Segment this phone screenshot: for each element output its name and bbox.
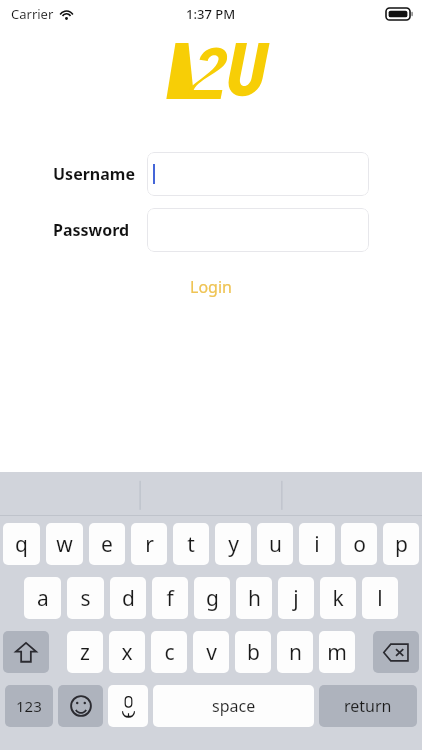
- staticText: a: [37, 584, 49, 613]
- button[interactable]: m: [319, 631, 355, 673]
- staticText: Password: [53, 219, 130, 241]
- button[interactable]: o: [341, 523, 377, 565]
- staticText: t: [187, 530, 195, 559]
- button[interactable]: c: [151, 631, 187, 673]
- button[interactable]: [147, 152, 369, 196]
- staticText: x: [121, 638, 133, 667]
- button[interactable]: g: [194, 577, 230, 619]
- button[interactable]: [147, 208, 369, 252]
- button[interactable]: Emoji: [58, 685, 103, 727]
- button[interactable]: n: [277, 631, 313, 673]
- staticText: Username: [53, 163, 135, 185]
- staticText: y: [228, 530, 239, 559]
- button[interactable]: t: [173, 523, 209, 565]
- button[interactable]: a: [24, 577, 61, 619]
- staticText: space: [212, 695, 256, 717]
- button[interactable]: Backspace: [373, 631, 419, 673]
- staticText: l: [377, 584, 383, 613]
- button[interactable]: j: [278, 577, 314, 619]
- staticText: p: [395, 530, 408, 559]
- button[interactable]: h: [236, 577, 272, 619]
- button[interactable]: Shift: [3, 631, 49, 673]
- button[interactable]: q: [3, 523, 40, 565]
- button[interactable]: x: [109, 631, 145, 673]
- staticText: v: [206, 638, 217, 667]
- button[interactable]: u: [257, 523, 293, 565]
- staticText: k: [332, 584, 344, 613]
- staticText: s: [80, 584, 91, 613]
- staticText: m: [327, 638, 347, 667]
- button[interactable]: b: [235, 631, 271, 673]
- staticText: q: [15, 530, 28, 559]
- button[interactable]: space: [153, 685, 314, 727]
- button[interactable]: y: [215, 523, 251, 565]
- button[interactable]: Login: [172, 270, 250, 304]
- button[interactable]: s: [67, 577, 104, 619]
- button[interactable]: 123: [5, 685, 53, 727]
- staticText: o: [353, 530, 366, 559]
- staticText: 1:37 PM: [186, 5, 236, 23]
- button[interactable]: return: [319, 685, 417, 727]
- button[interactable]: v: [193, 631, 229, 673]
- button[interactable]: l: [362, 577, 398, 619]
- staticText: h: [248, 584, 261, 613]
- button[interactable]: f: [152, 577, 188, 619]
- button[interactable]: p: [383, 523, 419, 565]
- button[interactable]: Dictation: [108, 685, 148, 727]
- staticText: 123: [16, 696, 42, 716]
- staticText: r: [145, 530, 154, 559]
- staticText: g: [206, 584, 219, 613]
- button[interactable]: i: [299, 523, 335, 565]
- staticText: j: [293, 584, 299, 613]
- staticText: i: [314, 530, 320, 559]
- staticText: Login: [190, 276, 232, 298]
- staticText: c: [164, 638, 175, 667]
- staticText: n: [289, 638, 302, 667]
- button[interactable]: r: [131, 523, 167, 565]
- staticText: Carrier: [11, 5, 54, 23]
- staticText: return: [344, 695, 392, 717]
- staticText: f: [166, 584, 174, 613]
- button[interactable]: k: [320, 577, 356, 619]
- staticText: z: [80, 638, 90, 667]
- button[interactable]: w: [46, 523, 83, 565]
- button[interactable]: z: [67, 631, 103, 673]
- staticText: b: [247, 638, 260, 667]
- staticText: d: [122, 584, 135, 613]
- staticText: u: [269, 530, 282, 559]
- button[interactable]: e: [89, 523, 125, 565]
- staticText: w: [56, 530, 73, 559]
- staticText: e: [101, 530, 113, 559]
- button[interactable]: d: [110, 577, 146, 619]
